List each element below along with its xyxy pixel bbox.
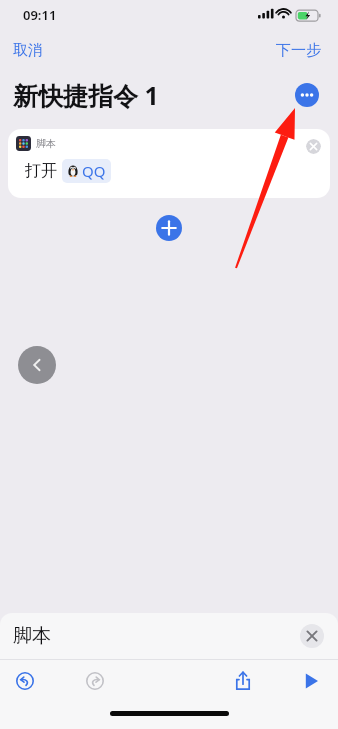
staticText: 打开 bbox=[25, 161, 57, 181]
button[interactable]: 取消 bbox=[6, 37, 50, 64]
staticText: 脚本 bbox=[13, 624, 51, 648]
button[interactable]: Add action bbox=[156, 215, 182, 241]
button[interactable]: Share bbox=[229, 667, 257, 695]
button[interactable]: More options bbox=[295, 83, 319, 107]
button[interactable]: 下一步 bbox=[269, 37, 328, 64]
button[interactable]: Close bbox=[300, 624, 324, 648]
button[interactable]: Remove action bbox=[306, 139, 321, 154]
staticText: 新快捷指令 1 bbox=[13, 78, 159, 112]
button[interactable]: 脚本 bbox=[8, 129, 330, 198]
staticText: 取消 bbox=[13, 41, 43, 60]
button[interactable]: Back bbox=[18, 346, 56, 384]
button[interactable]: Redo bbox=[81, 667, 109, 695]
staticText: 下一步 bbox=[276, 41, 321, 60]
staticText: 脚本 bbox=[36, 137, 56, 150]
button[interactable]: Undo bbox=[11, 667, 39, 695]
staticText: QQ bbox=[82, 161, 106, 181]
staticText: 09:11 bbox=[23, 6, 57, 24]
button[interactable]: QQ bbox=[62, 159, 111, 183]
button[interactable]: Run bbox=[297, 667, 325, 695]
